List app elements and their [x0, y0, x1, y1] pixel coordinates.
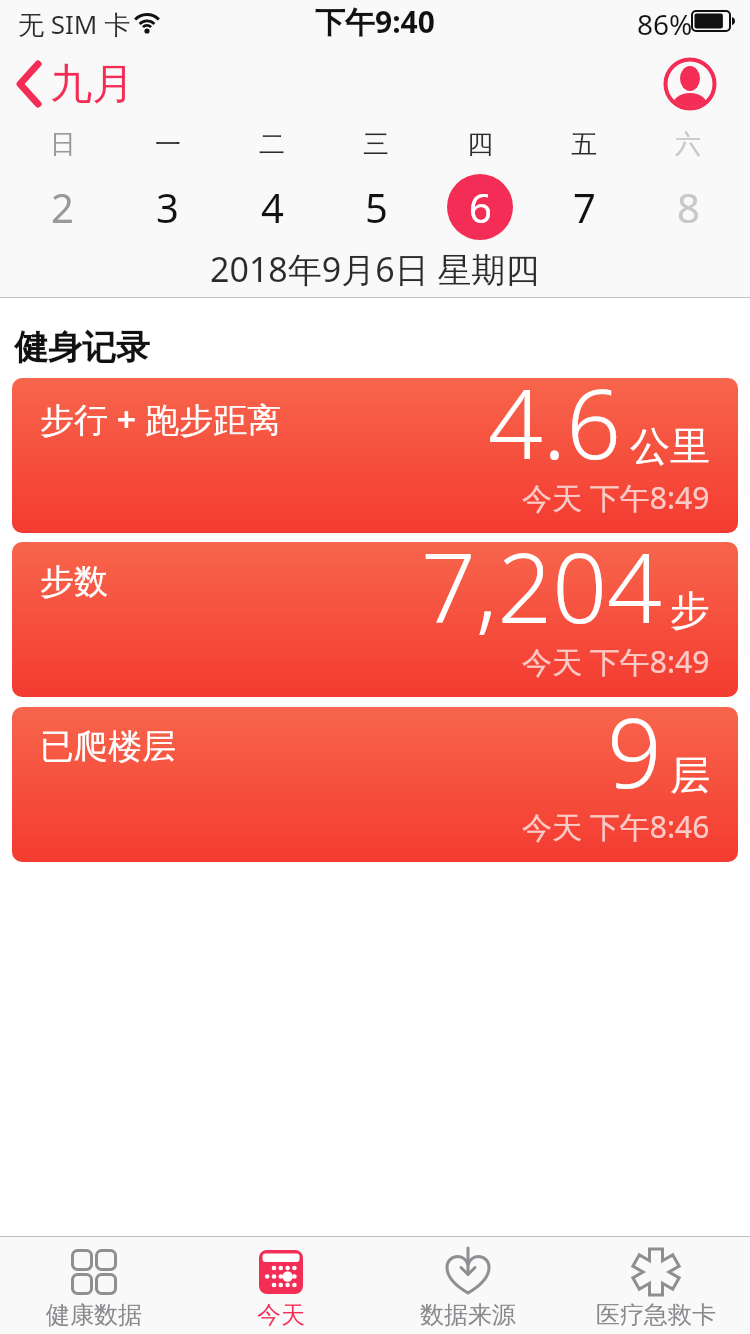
button[interactable]: 已爬楼层 — [12, 707, 738, 862]
staticText: 日 — [50, 128, 76, 161]
button[interactable]: 5 — [324, 172, 428, 242]
staticText: 一 — [155, 128, 181, 161]
staticText: 7 — [573, 180, 596, 234]
staticText: 五 — [571, 128, 597, 161]
staticText: 健身记录 — [14, 326, 150, 369]
staticText: 2 — [51, 180, 74, 234]
button[interactable]: 8 — [636, 172, 740, 242]
staticText: 六 — [675, 128, 701, 161]
staticText: 四 — [467, 128, 493, 161]
staticText: 九月 — [50, 58, 134, 111]
button[interactable]: 7 — [532, 172, 636, 242]
button[interactable]: 今天 — [187, 1236, 374, 1334]
button[interactable]: 数据来源 — [374, 1236, 562, 1334]
staticText: 三 — [363, 128, 389, 161]
staticText: 公里 — [630, 421, 710, 471]
staticText: 今天 下午8:49 — [522, 641, 710, 682]
staticText: 无 SIM 卡 — [18, 6, 131, 42]
staticText: 医疗急救卡 — [596, 1300, 716, 1330]
button[interactable] — [663, 57, 717, 111]
button[interactable]: 健康数据 — [0, 1236, 187, 1334]
staticText: 数据来源 — [420, 1300, 516, 1330]
staticText: 已爬楼层 — [40, 725, 176, 768]
staticText: 3 — [156, 180, 179, 234]
staticText: 健康数据 — [46, 1300, 142, 1330]
button[interactable]: 2 — [10, 172, 115, 242]
staticText: 4 — [261, 180, 284, 234]
button[interactable]: 步行 + 跑步距离 — [12, 378, 738, 533]
button[interactable]: 步数 — [12, 542, 738, 697]
staticText: 步 — [670, 585, 710, 635]
staticText: 4.6 — [488, 378, 622, 487]
staticText: 下午9:40 — [315, 1, 435, 42]
staticText: 6 — [469, 180, 492, 234]
staticText: 今天 — [257, 1300, 305, 1330]
staticText: 层 — [670, 750, 710, 800]
staticText: 步行 + 跑步距离 — [40, 396, 282, 442]
staticText: 9 — [607, 707, 662, 816]
button[interactable]: 3 — [115, 172, 220, 242]
staticText: 7,204 — [421, 542, 662, 651]
staticText: 今天 下午8:49 — [522, 477, 710, 518]
staticText: 2018年9月6日 星期四 — [210, 246, 540, 290]
button[interactable]: 6 — [428, 172, 532, 242]
staticText: 8 — [677, 180, 700, 234]
button[interactable]: 九月 — [14, 56, 134, 112]
staticText: 今天 下午8:46 — [522, 806, 710, 847]
staticText: 步数 — [40, 560, 108, 603]
staticText: 二 — [259, 128, 285, 161]
staticText: 86% — [637, 5, 693, 43]
button[interactable]: 4 — [220, 172, 324, 242]
button[interactable]: 医疗急救卡 — [562, 1236, 750, 1334]
staticText: 5 — [365, 180, 388, 234]
